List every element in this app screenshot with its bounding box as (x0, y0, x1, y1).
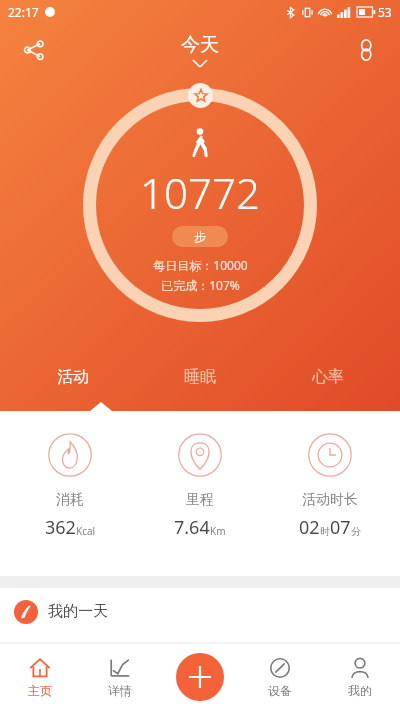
staticText: 每日目标：10000 (153, 257, 248, 273)
staticText: 心率 (312, 367, 344, 387)
button[interactable]: 里程 (140, 433, 260, 540)
button[interactable]: 步 (172, 226, 228, 247)
staticText: 里程 (186, 491, 214, 509)
staticText: 步 (194, 229, 206, 244)
button[interactable]: 我的 (320, 643, 400, 711)
staticText: 已完成：107% (161, 277, 240, 293)
button[interactable]: Achievement (188, 83, 213, 108)
button[interactable]: 心率 (273, 367, 383, 411)
button[interactable]: 今天 (181, 33, 219, 67)
staticText: 07 (330, 515, 351, 540)
staticText: 活动 (57, 367, 89, 387)
staticText: 时 (320, 525, 330, 538)
button[interactable]: 详情 (80, 643, 160, 711)
button[interactable]: 主页 (0, 643, 80, 711)
staticText: 睡眠 (184, 367, 216, 387)
staticText: 10772 (140, 164, 260, 221)
button[interactable]: Link device (346, 30, 386, 70)
staticText: 我的一天 (48, 602, 108, 621)
staticText: 详情 (108, 683, 132, 698)
button[interactable]: 我的一天 (0, 588, 400, 635)
staticText: 设备 (268, 683, 292, 698)
staticText: 53 (378, 4, 392, 20)
staticText: 02 (299, 515, 320, 540)
button[interactable]: 睡眠 (145, 367, 255, 411)
staticText: 主页 (28, 683, 52, 698)
staticText: 活动时长 (302, 491, 358, 509)
button[interactable]: 活动 (18, 367, 128, 411)
staticText: 消耗 (56, 491, 84, 509)
staticText: Kcal (76, 524, 96, 538)
button[interactable]: 活动时长 (270, 433, 390, 540)
staticText: 362 (45, 515, 76, 540)
staticText: 今天 (181, 33, 219, 57)
button[interactable]: 消耗 (10, 433, 130, 540)
button[interactable]: 设备 (240, 643, 320, 711)
button[interactable]: Add (176, 653, 224, 701)
staticText: 分 (351, 525, 361, 538)
staticText: 7.64 (174, 515, 210, 540)
staticText: Km (210, 524, 226, 538)
button[interactable]: Share (14, 30, 54, 70)
staticText: 22:17 (8, 4, 39, 20)
staticText: 我的 (348, 683, 372, 698)
